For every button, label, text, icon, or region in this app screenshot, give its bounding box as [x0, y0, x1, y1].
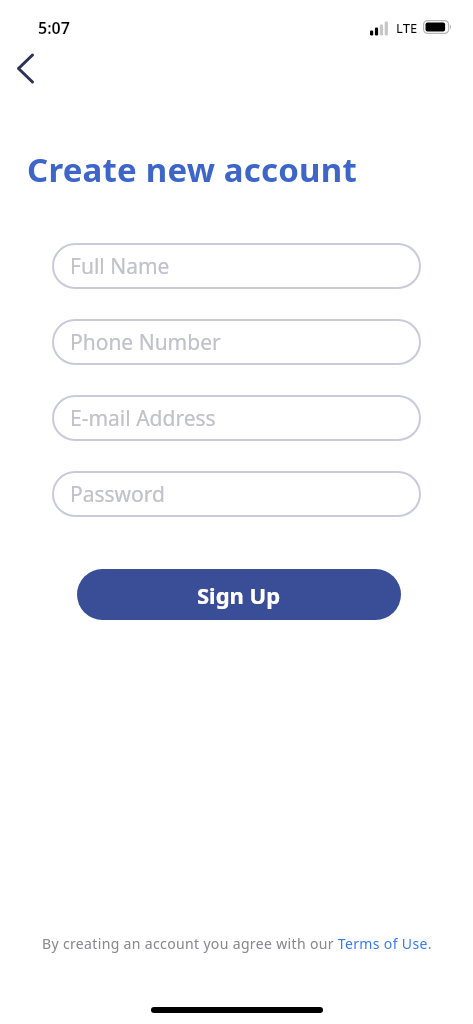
staticText: By creating an account you agree with ou… [42, 934, 432, 953]
staticText: Phone Number [70, 328, 221, 357]
staticText: 5:07 [38, 17, 70, 39]
staticText: Create new account [27, 147, 357, 192]
button[interactable]: Sign Up [77, 569, 401, 620]
button[interactable]: Phone Number [52, 319, 421, 365]
button[interactable] [10, 48, 46, 88]
staticText: Password [70, 480, 165, 509]
staticText: Sign Up [197, 580, 281, 610]
staticText: Full Name [70, 252, 170, 281]
staticText: LTE [396, 19, 418, 37]
button[interactable]: Full Name [52, 243, 421, 289]
button[interactable]: By creating an account you agree with ou… [0, 934, 473, 953]
staticText: E-mail Address [70, 404, 216, 433]
button[interactable]: E-mail Address [52, 395, 421, 441]
button[interactable]: Password [52, 471, 421, 517]
